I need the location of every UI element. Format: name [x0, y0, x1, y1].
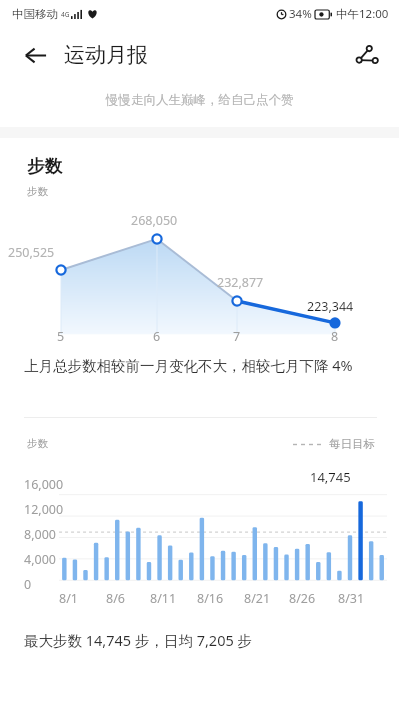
staticText: 中午12:00: [336, 6, 389, 22]
staticText: 运动月报: [64, 42, 148, 68]
staticText: 6: [153, 328, 161, 345]
staticText: 4G: [61, 10, 70, 19]
staticText: 232,877: [217, 274, 264, 291]
staticText: 223,344: [307, 298, 354, 315]
staticText: 慢慢走向人生巅峰，给自己点个赞: [106, 92, 294, 108]
staticText: 12,000: [24, 501, 64, 518]
staticText: 14,745: [310, 468, 351, 486]
button[interactable]: 返回: [14, 34, 56, 76]
staticText: 34%: [289, 6, 312, 22]
staticText: 8/1: [59, 590, 78, 607]
staticText: 上月总步数相较前一月变化不大，相较七月下降 4%: [24, 355, 353, 375]
button[interactable]: 分享: [345, 34, 387, 76]
staticText: 0: [24, 576, 32, 593]
staticText: 步数: [27, 155, 62, 177]
staticText: 8/11: [150, 590, 177, 607]
staticText: 8/16: [197, 590, 224, 607]
staticText: 4,000: [24, 551, 56, 568]
staticText: 8/26: [289, 590, 316, 607]
staticText: 8/21: [244, 590, 271, 607]
staticText: 16,000: [24, 476, 64, 493]
staticText: 268,050: [131, 212, 178, 229]
staticText: 8: [331, 328, 339, 345]
staticText: 中国移动: [12, 7, 58, 21]
staticText: 5: [57, 328, 65, 345]
staticText: 最大步数 14,745 步，日均 7,205 步: [24, 630, 252, 650]
staticText: 步数: [27, 437, 48, 450]
staticText: 每日目标: [329, 437, 375, 451]
staticText: 8/31: [338, 590, 365, 607]
staticText: 步数: [27, 185, 48, 198]
staticText: 8,000: [24, 526, 56, 543]
staticText: 8/6: [106, 590, 125, 607]
staticText: 250,525: [8, 244, 55, 261]
staticText: 7: [233, 328, 241, 345]
